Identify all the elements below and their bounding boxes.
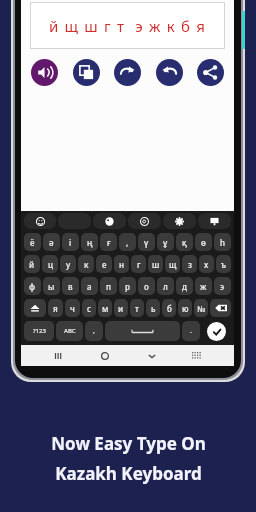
button[interactable]: с xyxy=(82,299,96,317)
staticText: ь xyxy=(151,303,156,314)
staticText: б xyxy=(167,303,172,314)
button[interactable]: б xyxy=(162,299,176,317)
button[interactable]: ш xyxy=(148,255,163,273)
button[interactable]: ә xyxy=(43,233,60,251)
button[interactable]: й щ ш г т э ж к б я xyxy=(30,2,225,49)
button[interactable]: tool4 xyxy=(163,213,196,229)
staticText: ж xyxy=(200,281,207,292)
button[interactable]: tool5 xyxy=(198,213,231,229)
staticText: ю xyxy=(182,303,189,314)
staticText: , xyxy=(93,326,95,336)
button[interactable]: ч xyxy=(65,299,80,317)
button[interactable]: ?123 xyxy=(24,321,54,341)
staticText: у xyxy=(66,259,71,270)
button[interactable]: Redo xyxy=(114,59,141,86)
staticText: в xyxy=(68,281,73,292)
button[interactable]: . xyxy=(182,321,200,341)
button[interactable]: қ xyxy=(176,233,193,251)
button[interactable]: в xyxy=(62,277,79,295)
staticText: ә xyxy=(49,237,54,248)
button[interactable]: ң xyxy=(81,233,98,251)
button[interactable]: ү xyxy=(138,233,155,251)
button[interactable]: з xyxy=(182,255,197,273)
button[interactable]: ұ xyxy=(157,233,174,251)
button[interactable]: н xyxy=(114,255,129,273)
button[interactable]: key xyxy=(210,299,231,317)
staticText: ?123 xyxy=(33,327,46,335)
button[interactable]: Switch keyboard xyxy=(189,348,205,364)
button[interactable]: а xyxy=(81,277,98,295)
button[interactable]: ь xyxy=(146,299,160,317)
button[interactable]: tool3 xyxy=(128,213,161,229)
button[interactable]: г xyxy=(131,255,146,273)
button[interactable]: я xyxy=(48,299,63,317)
staticText: қ xyxy=(182,237,187,248)
button[interactable]: п xyxy=(100,277,117,295)
button[interactable]: м xyxy=(98,299,112,317)
button[interactable]: ю xyxy=(178,299,192,317)
button[interactable]: Share xyxy=(197,59,224,86)
staticText: к xyxy=(84,259,89,270)
button[interactable]: Copy xyxy=(73,59,100,86)
staticText: л xyxy=(163,281,168,292)
button[interactable]: р xyxy=(119,277,136,295)
staticText: е xyxy=(102,259,107,270)
staticText: һ xyxy=(220,237,226,248)
button[interactable]: , xyxy=(119,233,136,251)
button[interactable]: ж xyxy=(195,277,212,295)
button[interactable]: і xyxy=(62,233,79,251)
button[interactable]: ц xyxy=(42,255,58,273)
button[interactable]: Undo xyxy=(156,59,183,86)
staticText: ч xyxy=(70,303,75,314)
button[interactable]: л xyxy=(157,277,174,295)
staticText: д xyxy=(182,281,187,292)
button[interactable]: й xyxy=(24,255,40,273)
button[interactable]: е xyxy=(96,255,112,273)
staticText: й щ ш г т э ж к б я xyxy=(49,16,207,36)
staticText: х xyxy=(204,259,209,270)
button[interactable]: Home xyxy=(97,348,113,364)
button[interactable]: tool1 xyxy=(58,213,91,229)
staticText: Kazakh Keyboard xyxy=(55,462,202,485)
button[interactable]: Speak xyxy=(31,59,58,86)
staticText: а xyxy=(87,281,92,292)
button[interactable]: tool0 xyxy=(24,213,56,229)
button[interactable]: и xyxy=(114,299,128,317)
button[interactable]: у xyxy=(60,255,76,273)
staticText: , xyxy=(126,237,129,248)
button[interactable]: һ xyxy=(214,233,231,251)
staticText: я xyxy=(53,303,58,314)
staticText: п xyxy=(106,281,111,292)
button[interactable]: tool2 xyxy=(93,213,126,229)
button[interactable]: д xyxy=(176,277,193,295)
button[interactable]: ё xyxy=(24,233,41,251)
button[interactable]: ф xyxy=(24,277,41,295)
staticText: г xyxy=(137,259,141,270)
button[interactable]: щ xyxy=(165,255,180,273)
button[interactable]: key xyxy=(105,321,180,341)
button[interactable]: ABC xyxy=(56,321,83,341)
button[interactable]: к xyxy=(78,255,94,273)
staticText: ү xyxy=(144,237,149,248)
button[interactable]: т xyxy=(130,299,144,317)
button[interactable]: ы xyxy=(43,277,60,295)
button[interactable]: э xyxy=(214,277,231,295)
button[interactable]: ъ xyxy=(216,255,231,273)
button[interactable]: ө xyxy=(195,233,212,251)
staticText: о xyxy=(144,281,149,292)
button[interactable]: Enter xyxy=(207,322,226,341)
button[interactable]: ғ xyxy=(100,233,117,251)
button[interactable]: х xyxy=(199,255,214,273)
button[interactable]: № xyxy=(194,299,208,317)
button[interactable]: key xyxy=(24,299,46,317)
staticText: н xyxy=(119,259,125,270)
button[interactable]: , xyxy=(85,321,103,341)
staticText: ш xyxy=(152,259,160,270)
button[interactable]: Recents xyxy=(50,348,66,364)
staticText: і xyxy=(69,237,72,248)
button[interactable]: Hide keyboard xyxy=(144,348,160,364)
staticText: й xyxy=(29,259,35,270)
button[interactable]: о xyxy=(138,277,155,295)
staticText: щ xyxy=(169,259,177,270)
staticText: з xyxy=(188,259,192,270)
